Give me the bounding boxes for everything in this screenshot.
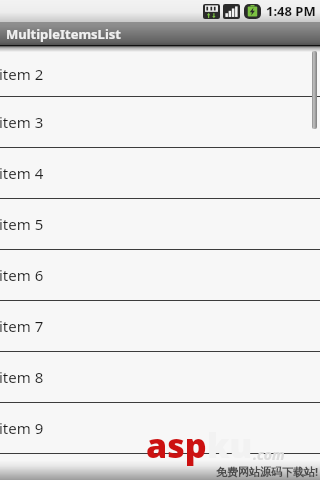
- button[interactable]: item 3: [0, 97, 320, 148]
- button[interactable]: item 7: [0, 301, 320, 352]
- staticText: asp: [146, 422, 207, 468]
- staticText: item 5: [0, 214, 44, 234]
- staticText: .com: [253, 445, 285, 464]
- button[interactable]: item 4: [0, 148, 320, 199]
- staticText: item 2: [0, 64, 44, 84]
- staticText: ku: [207, 422, 253, 468]
- button[interactable]: item 6: [0, 250, 320, 301]
- button[interactable]: [0, 454, 320, 480]
- staticText: 1:48 PM: [266, 2, 316, 20]
- staticText: item 4: [0, 163, 44, 183]
- button[interactable]: item 8: [0, 352, 320, 403]
- staticText: 免费网站源码下载站!: [215, 464, 318, 479]
- staticText: item 9: [0, 418, 44, 438]
- staticText: item 3: [0, 112, 44, 132]
- staticText: item 8: [0, 367, 44, 387]
- button[interactable]: item 5: [0, 199, 320, 250]
- button[interactable]: item 2: [0, 52, 320, 97]
- button[interactable]: item 9: [0, 403, 320, 454]
- staticText: MultipleItemsList: [6, 25, 121, 43]
- staticText: item 6: [0, 265, 44, 285]
- staticText: item 7: [0, 316, 44, 336]
